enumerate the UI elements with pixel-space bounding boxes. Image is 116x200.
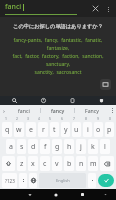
staticText: English [56,178,70,183]
button[interactable]: Back [17,189,43,200]
button[interactable]: Period [88,173,96,188]
staticText: Fancy [85,107,99,114]
button[interactable]: u [72,122,81,137]
button[interactable]: Shift [2,156,15,171]
button[interactable]: Comma [19,173,27,188]
staticText: fanci [5,2,22,12]
staticText: 8 [85,116,87,121]
button[interactable]: 3 [22,116,33,121]
button[interactable]: 4 [33,116,44,121]
button[interactable]: GIF [29,96,58,105]
button[interactable]: Fancy [75,105,108,116]
staticText: k [91,142,95,152]
button[interactable]: 0 [104,116,116,121]
button[interactable]: z [17,156,26,171]
button[interactable]: 7 [68,116,80,121]
staticText: r [42,125,45,135]
staticText: f [44,142,47,152]
button[interactable]: y [61,122,70,137]
button[interactable]: Space [39,173,86,188]
staticText: 0 [109,116,111,121]
staticText: a [9,142,13,152]
staticText: e [29,125,33,135]
button[interactable]: m [88,156,98,171]
staticText: m [90,159,97,169]
button[interactable]: r [38,122,48,137]
button[interactable]: b [64,156,74,171]
staticText: l [104,142,106,152]
button[interactable]: j [76,139,86,154]
button[interactable]: Search [0,96,29,105]
button[interactable]: o [94,122,103,137]
button[interactable]: fanci [5,2,77,15]
staticText: v [55,159,59,169]
staticText: fanci [18,107,30,114]
staticText: fancy [51,107,65,114]
staticText: 1 [5,116,7,121]
staticText: 5 [49,116,51,121]
staticText: 9 [97,116,99,121]
button[interactable]: x [28,156,38,171]
button[interactable]: Backspace [100,156,114,171]
staticText: u [74,125,79,135]
button[interactable]: a [6,139,15,154]
button[interactable]: w [14,122,24,137]
button[interactable]: p [105,122,114,137]
button[interactable]: More options [102,3,114,15]
staticText: 4 [38,116,40,121]
staticText: j [80,142,82,152]
button[interactable]: 9 [92,116,104,121]
button[interactable]: q [2,122,12,137]
staticText: 6 [61,116,63,121]
button[interactable]: 6 [56,116,68,121]
staticText: n [79,159,84,169]
button[interactable]: n [76,156,86,171]
staticText: z [20,159,24,169]
button[interactable]: Change language [29,173,37,188]
button[interactable]: fanci [7,105,40,116]
button[interactable]: Recent apps [69,189,95,200]
button[interactable]: 8 [80,116,92,121]
button[interactable]: 5 [44,116,56,121]
staticText: t [53,125,56,135]
staticText: h [67,142,72,152]
button[interactable]: s [17,139,26,154]
staticText: c [43,159,47,169]
button[interactable]: c [40,156,50,171]
button[interactable]: h [64,139,74,154]
staticText: fancy-pants, fancy, fantastic, fanatic, … [4,37,112,76]
staticText: o [96,125,101,135]
button[interactable]: k [88,139,98,154]
staticText: この中にお探しの単語はありますか？ [13,23,103,30]
staticText: › [3,107,5,115]
button[interactable]: Search [98,174,114,187]
staticText: ?123 [5,178,15,184]
button[interactable]: Settings [87,96,116,105]
button[interactable]: g [52,139,62,154]
button[interactable]: d [28,139,38,154]
button[interactable]: ?123 [2,173,17,188]
button[interactable]: v [52,156,62,171]
button[interactable]: Keyboard [100,79,111,90]
staticText: g [55,142,60,152]
button[interactable]: Hide keyboard [95,189,116,200]
button[interactable]: e [26,122,36,137]
button[interactable]: Clipboard [58,96,87,105]
button[interactable]: f [40,139,50,154]
staticText: y [64,125,68,135]
button[interactable]: t [50,122,59,137]
staticText: w [16,125,22,135]
staticText: 3 [27,116,29,121]
staticText: p [107,125,112,135]
button[interactable]: 1 [0,116,11,121]
button[interactable]: Clear [89,2,102,15]
staticText: b [67,159,72,169]
button[interactable]: Home [43,189,69,200]
button[interactable]: More suggestions [108,105,116,116]
button[interactable]: fancy [41,105,74,116]
staticText: d [31,142,36,152]
button[interactable]: 2 [11,116,22,121]
button[interactable]: Previous [0,105,7,116]
button[interactable]: l [100,139,110,154]
button[interactable]: i [83,122,92,137]
